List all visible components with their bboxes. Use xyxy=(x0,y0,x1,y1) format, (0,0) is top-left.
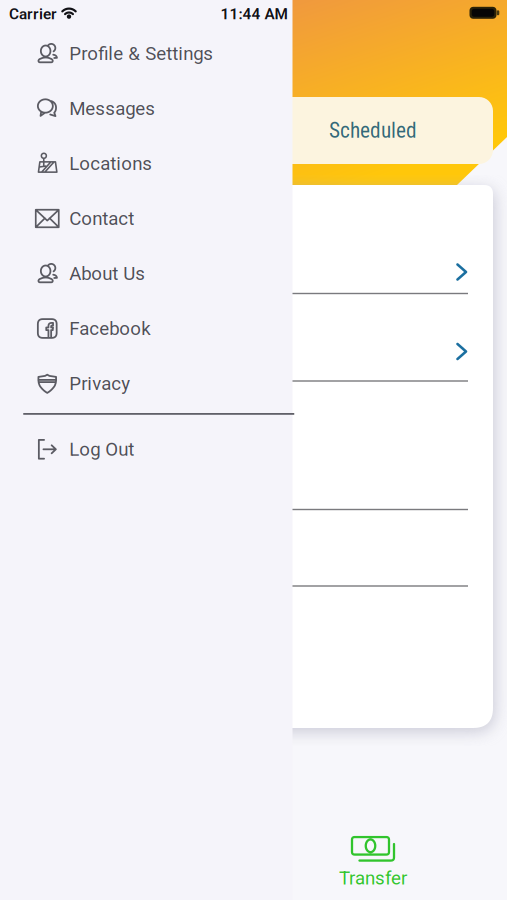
staticText: Locations xyxy=(69,153,152,174)
staticText: 11:44 AM xyxy=(220,5,287,23)
staticText: Privacy xyxy=(69,373,130,394)
button[interactable]: Facebook xyxy=(0,301,290,356)
staticText: Messages xyxy=(69,98,155,119)
staticText: Log Out xyxy=(69,438,134,460)
staticText: Carrier xyxy=(9,5,57,23)
button[interactable]: Scheduled xyxy=(253,97,493,164)
staticText: Profile & Settings xyxy=(69,43,213,64)
button[interactable]: Profile & Settings xyxy=(0,26,290,81)
button[interactable]: Privacy xyxy=(0,356,290,411)
button[interactable]: Locations xyxy=(0,136,290,191)
button[interactable]: Messages xyxy=(0,81,290,136)
staticText: About Us xyxy=(69,263,145,284)
button[interactable]: Transfer xyxy=(318,832,428,894)
button[interactable]: Log Out xyxy=(0,422,290,477)
staticText: Transfer xyxy=(339,867,407,889)
button[interactable]: Contact xyxy=(0,191,290,246)
button[interactable]: About Us xyxy=(0,246,290,301)
staticText: Contact xyxy=(69,208,134,229)
button[interactable]: View details xyxy=(39,229,493,315)
button[interactable]: View details xyxy=(39,308,493,394)
staticText: Scheduled xyxy=(329,118,417,143)
staticText: Facebook xyxy=(69,318,150,339)
